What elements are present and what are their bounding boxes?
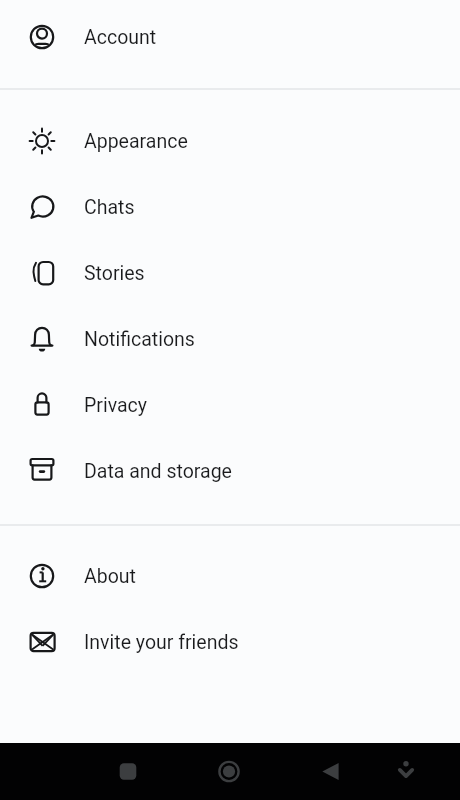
button[interactable] bbox=[100, 743, 156, 799]
staticText: Privacy bbox=[84, 394, 147, 417]
button[interactable]: Chats bbox=[0, 174, 460, 240]
staticText: Chats bbox=[84, 196, 135, 219]
button[interactable]: Stories bbox=[0, 240, 460, 306]
staticText: Data and storage bbox=[84, 460, 232, 483]
button[interactable]: Data and storage bbox=[0, 438, 460, 504]
staticText: Invite your friends bbox=[84, 631, 239, 654]
button[interactable]: About bbox=[0, 543, 460, 609]
button[interactable]: Account bbox=[0, 4, 460, 70]
button[interactable]: Invite your friends bbox=[0, 609, 460, 675]
button[interactable] bbox=[303, 743, 359, 799]
button[interactable]: Appearance bbox=[0, 108, 460, 174]
button[interactable] bbox=[379, 743, 435, 799]
button[interactable]: Notifications bbox=[0, 306, 460, 372]
staticText: Account bbox=[84, 26, 157, 49]
button[interactable] bbox=[201, 743, 257, 799]
staticText: Notifications bbox=[84, 328, 195, 351]
staticText: Appearance bbox=[84, 130, 188, 153]
button[interactable]: Privacy bbox=[0, 372, 460, 438]
staticText: Stories bbox=[84, 262, 145, 285]
staticText: About bbox=[84, 565, 136, 588]
